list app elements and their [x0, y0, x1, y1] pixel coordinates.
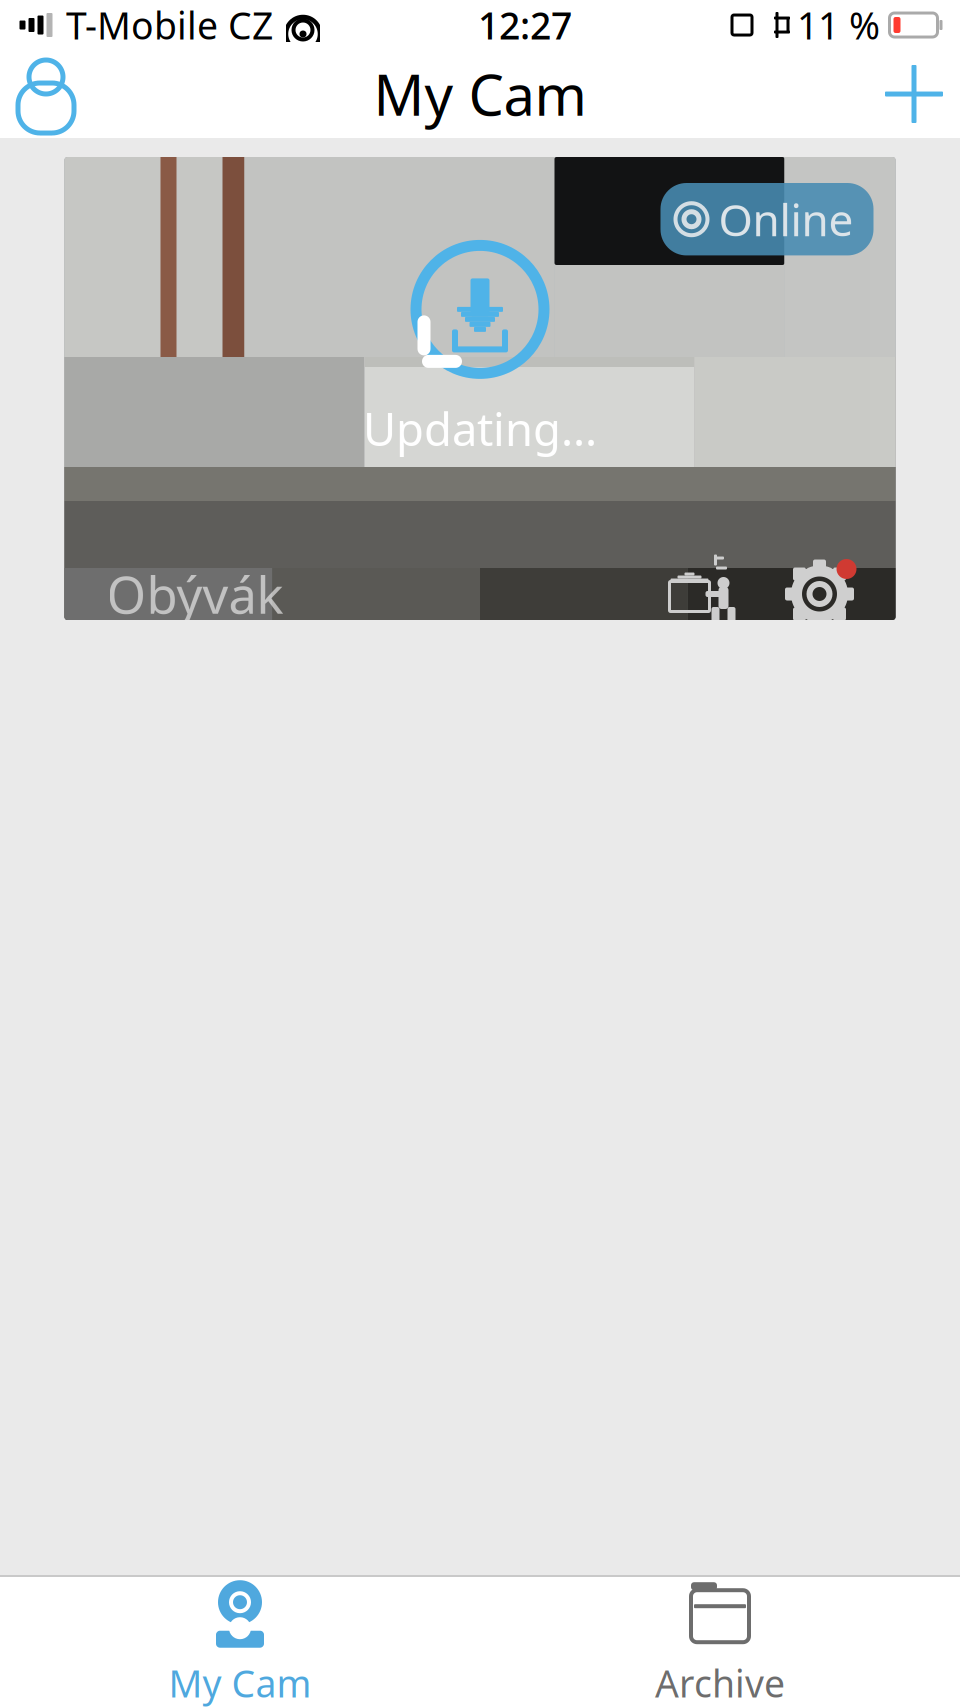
staticText: 11 % [797, 0, 880, 50]
button[interactable]: Account [0, 50, 92, 138]
staticText: Archive [655, 1658, 785, 1707]
staticText: Online [718, 190, 853, 248]
staticText: My Cam [373, 57, 586, 131]
staticText: My Cam [168, 1658, 311, 1707]
button[interactable]: Motion detection [661, 559, 745, 629]
button[interactable]: My Cam [0, 1577, 480, 1707]
staticText: Obývák [106, 560, 283, 628]
staticText: 12:27 [478, 0, 572, 50]
button[interactable]: Add camera [868, 50, 960, 138]
button[interactable]: Camera settings [777, 556, 861, 632]
button[interactable]: Archive [480, 1577, 960, 1707]
staticText: T-Mobile CZ [66, 0, 273, 50]
staticText: Updating... [363, 398, 597, 459]
button[interactable]: Online [64, 157, 895, 620]
